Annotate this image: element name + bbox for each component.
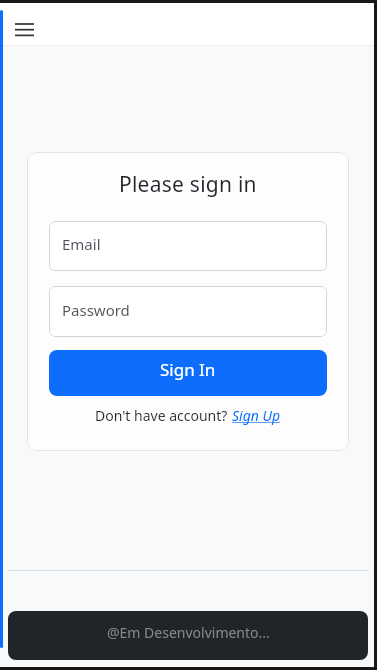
staticText: @Em Desenvolvimento... <box>107 623 270 642</box>
staticText: Password <box>62 300 130 320</box>
button[interactable]: Sign In <box>49 350 327 396</box>
button[interactable]: Sign Up <box>232 406 281 425</box>
button[interactable] <box>7 14 41 46</box>
staticText: Email <box>62 234 101 254</box>
staticText: Sign In <box>160 358 216 381</box>
staticText: Please sign in <box>119 170 257 199</box>
staticText: Don't have account? <box>95 406 232 425</box>
button[interactable]: Email <box>49 221 327 271</box>
button[interactable]: Password <box>49 286 327 337</box>
button[interactable]: @Em Desenvolvimento... <box>8 611 368 660</box>
